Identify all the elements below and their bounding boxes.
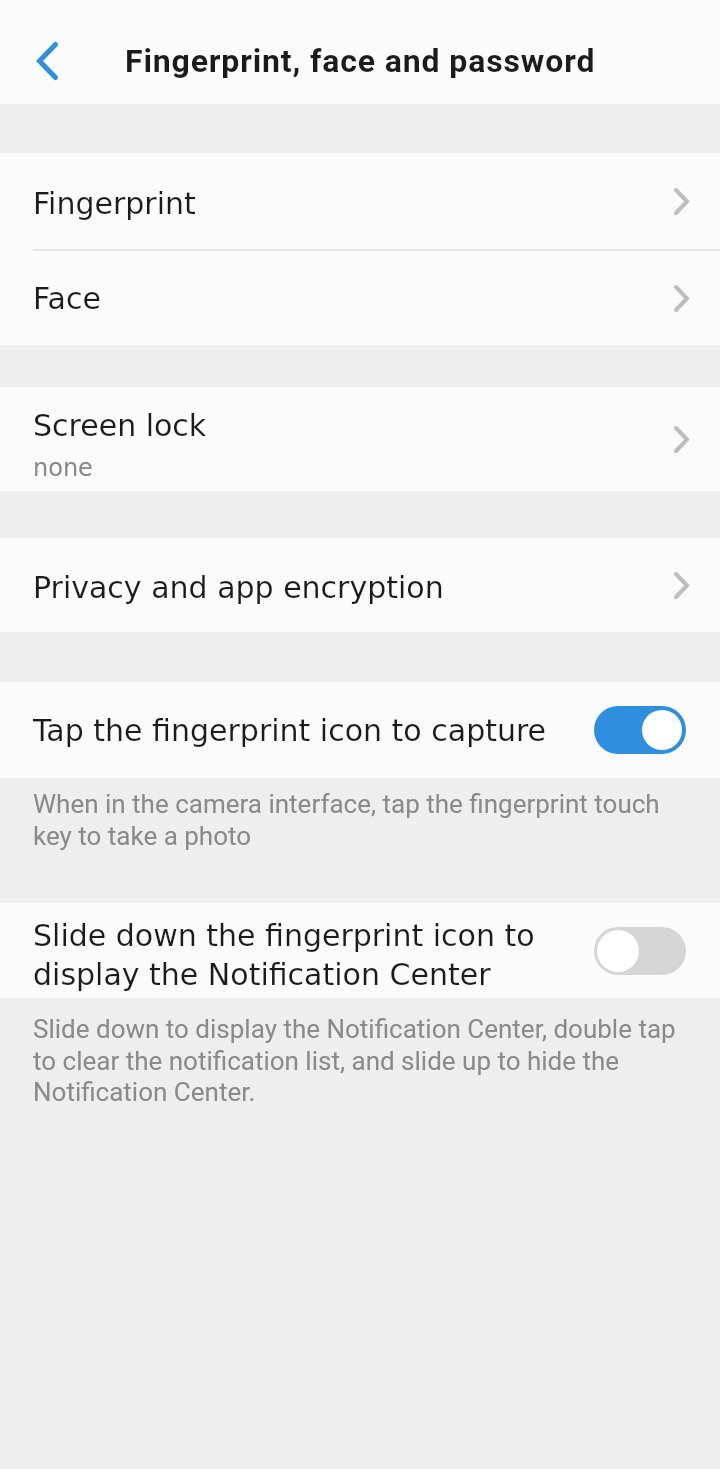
staticText: Screen lock (33, 408, 207, 443)
staticText: Fingerprint (33, 186, 196, 221)
button[interactable] (594, 927, 686, 975)
staticText: Slide down the fingerprint icon to displ… (33, 918, 535, 992)
button[interactable]: Fingerprint (0, 153, 720, 249)
staticText: When in the camera interface, tap the fi… (33, 789, 660, 851)
staticText: none (33, 454, 93, 482)
button[interactable] (594, 706, 686, 754)
button[interactable]: Face (0, 251, 720, 345)
button[interactable]: Tap the fingerprint icon to capture (0, 682, 720, 778)
button[interactable] (24, 38, 70, 84)
button[interactable]: Slide down the fingerprint icon to displ… (0, 903, 720, 998)
staticText: Fingerprint, face and password (125, 42, 596, 80)
staticText: Slide down to display the Notification C… (33, 1014, 676, 1107)
staticText: Tap the fingerprint icon to capture (33, 713, 547, 748)
button[interactable]: Screen lock (0, 387, 720, 491)
staticText: Privacy and app encryption (33, 570, 444, 605)
staticText: Face (33, 281, 101, 316)
button[interactable]: Privacy and app encryption (0, 538, 720, 632)
